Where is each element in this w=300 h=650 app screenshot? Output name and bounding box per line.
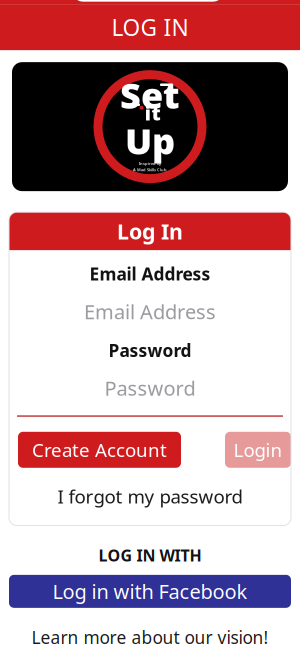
button[interactable]: Learn more about our vision! xyxy=(0,623,300,650)
staticText: it xyxy=(144,99,160,126)
button[interactable]: I forgot my password xyxy=(9,481,291,512)
staticText: Inspired by xyxy=(139,161,161,166)
staticText: Create Account xyxy=(32,437,167,462)
button[interactable]: Create Account xyxy=(18,432,181,468)
button[interactable]: Login xyxy=(225,432,291,468)
button[interactable]: Log in with Facebook xyxy=(9,575,291,608)
staticText: Email Address xyxy=(89,262,210,285)
staticText: Learn more about our vision! xyxy=(31,626,268,649)
staticText: Email Address xyxy=(84,298,216,325)
staticText: Password xyxy=(104,375,195,401)
staticText: Login xyxy=(233,437,282,462)
staticText: Log In xyxy=(117,217,183,245)
staticText: Up xyxy=(125,117,175,164)
staticText: Log in with Facebook xyxy=(52,578,247,605)
staticText: Set xyxy=(120,71,180,119)
staticText: LOG IN WITH xyxy=(98,545,201,566)
staticText: A Mad Skills Club xyxy=(133,167,167,172)
staticText: I forgot my password xyxy=(57,484,242,509)
staticText: LOG IN xyxy=(111,12,188,42)
staticText: Password xyxy=(108,339,191,362)
